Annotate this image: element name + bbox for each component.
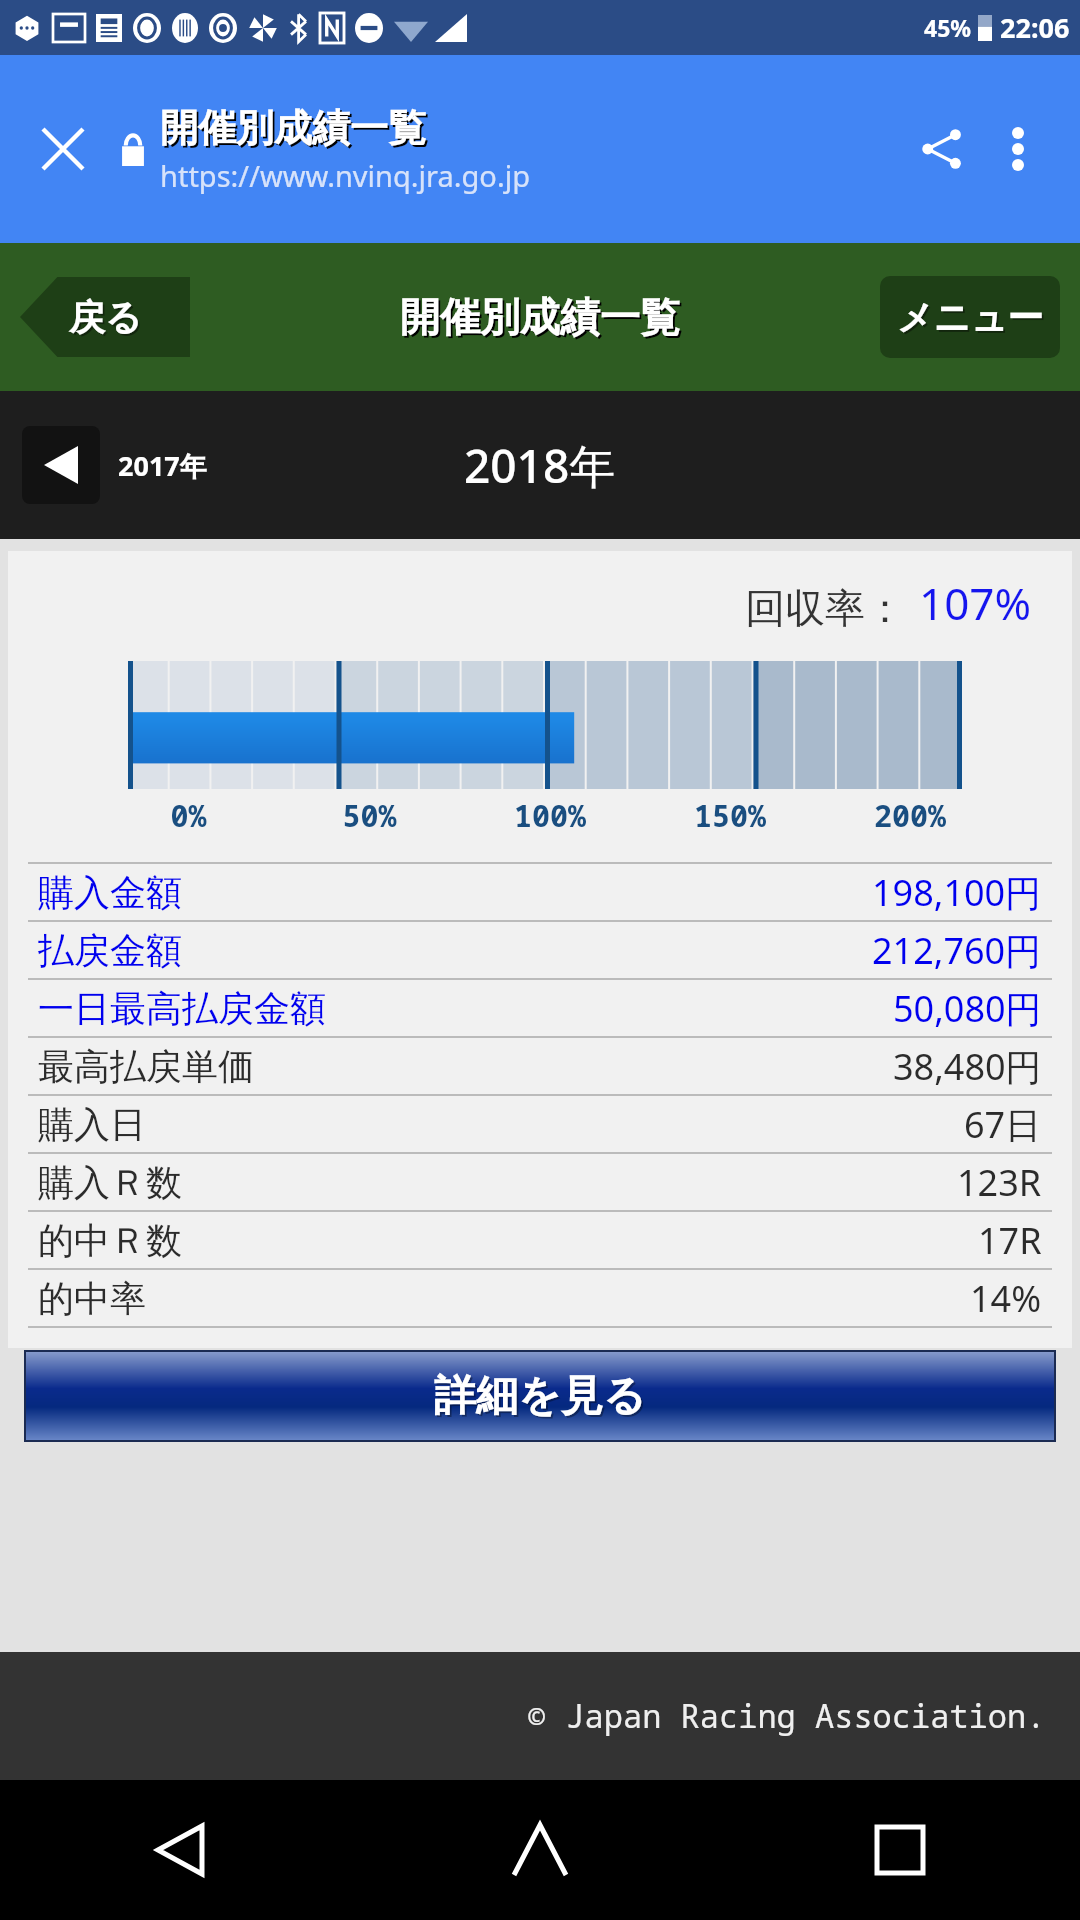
button[interactable]: 2017年 (22, 426, 207, 504)
staticText: 150% (640, 795, 820, 836)
staticText: 212,760円 (872, 926, 1042, 975)
staticText: 詳細を見る (436, 1372, 648, 1425)
staticText: 50% (279, 795, 460, 836)
staticText: 戻る (69, 295, 142, 340)
staticText: 購入日 (38, 1102, 146, 1147)
button[interactable]: 戻る (20, 277, 190, 357)
staticText: 123R (957, 1158, 1042, 1207)
staticText: 的中Ｒ数 (38, 1218, 182, 1263)
staticText: 購入金額 (38, 870, 182, 915)
staticText: 最高払戻単価 (38, 1044, 254, 1089)
staticText: 2018年 (464, 434, 616, 497)
button[interactable]: More options (982, 113, 1054, 185)
button[interactable]: Back (0, 1780, 360, 1920)
button[interactable]: 一日最高払戻金額 (28, 980, 1052, 1036)
staticText: 的中率 (38, 1276, 146, 1321)
button[interactable]: メニュー (880, 276, 1060, 358)
staticText: 戻る (71, 297, 144, 342)
staticText: 開催別成績一覧 (400, 292, 680, 342)
staticText: 67日 (964, 1100, 1042, 1149)
staticText: 50,080円 (893, 984, 1042, 1033)
staticText: https://www.nvinq.jra.go.jp (160, 156, 530, 195)
staticText: 一日最高払戻金額 (38, 986, 326, 1031)
button[interactable]: 払戻金額 (28, 922, 1052, 978)
staticText: 払戻金額 (38, 928, 182, 973)
staticText: 17R (978, 1216, 1042, 1265)
staticText: 回収率： (745, 583, 905, 633)
staticText: 2017年 (118, 447, 207, 484)
staticText: 198,100円 (872, 868, 1042, 917)
staticText: 22:06 (1000, 9, 1070, 46)
staticText: 開催別成績一覧 (160, 104, 426, 152)
button[interactable]: Close (26, 112, 100, 186)
staticText: メニュー (899, 297, 1046, 342)
staticText: 詳細を見る (434, 1370, 646, 1423)
button[interactable]: Home (360, 1780, 720, 1920)
staticText: 38,480円 (893, 1042, 1042, 1091)
staticText: 0% (98, 795, 279, 836)
staticText: 107% (919, 573, 1032, 633)
button[interactable]: Recent apps (720, 1780, 1080, 1920)
staticText: 14% (970, 1274, 1042, 1323)
staticText: 購入Ｒ数 (38, 1160, 182, 1205)
button[interactable]: Share (902, 109, 982, 189)
staticText: © Japan Racing Association. (527, 1694, 1046, 1738)
staticText: メニュー (897, 295, 1044, 340)
staticText: 200% (820, 795, 1000, 836)
button[interactable]: 詳細を見る (24, 1350, 1056, 1442)
staticText: 開催別成績一覧 (402, 294, 682, 344)
staticText: 100% (460, 795, 640, 836)
button[interactable]: 購入金額 (28, 864, 1052, 920)
staticText: 45% (924, 12, 972, 43)
staticText: 開催別成績一覧 (162, 106, 428, 154)
